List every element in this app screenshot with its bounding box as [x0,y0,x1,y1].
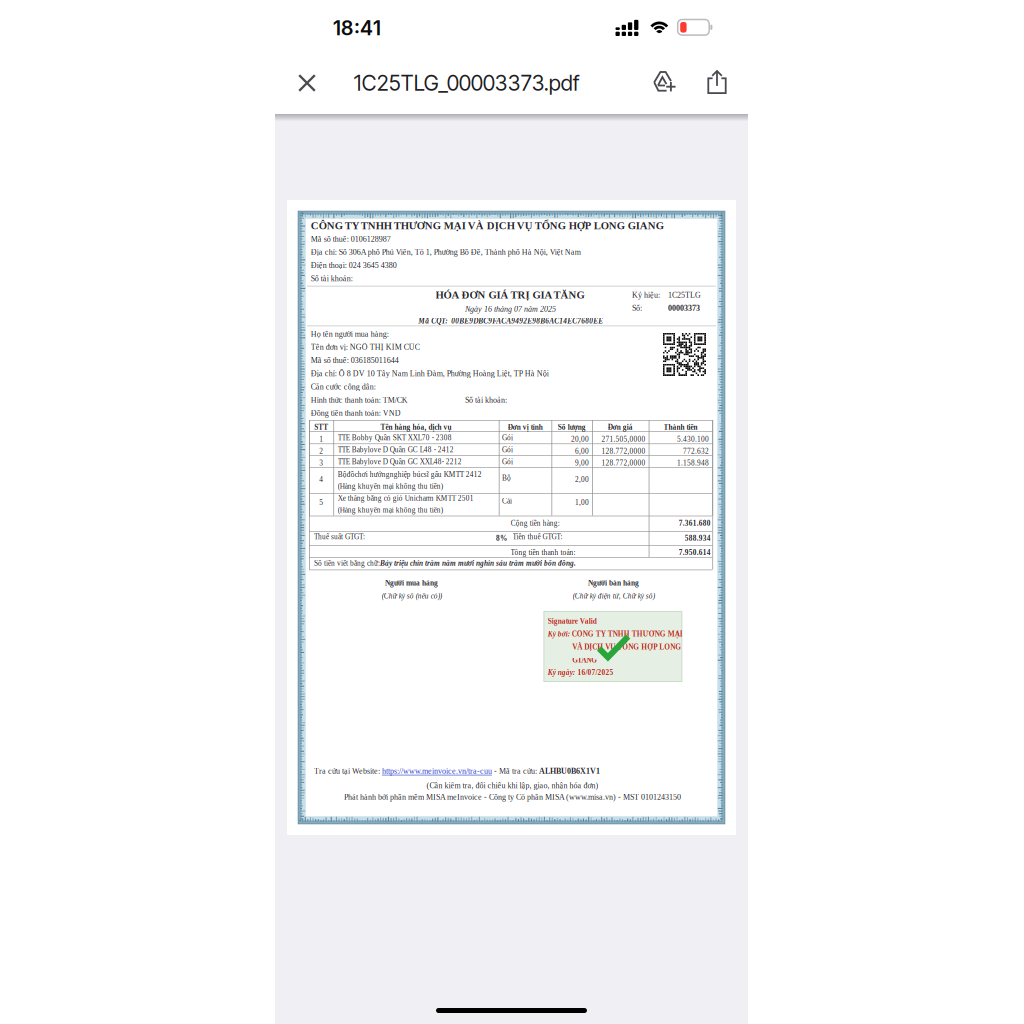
staticText: 128.772,0000 [601,447,645,455]
staticText: Địa chỉ: Số 306A phố Phú Viên, Tổ 1, Phư… [311,248,581,257]
staticText: 00003373 [668,303,700,312]
staticText: Thành tiền [663,423,697,431]
staticText: Số tài khoản: [465,395,507,404]
staticText: Gói [502,434,513,442]
staticText: Căn cước công dân: [311,382,376,391]
staticText: 588.934 [685,534,711,542]
staticText: (Hàng khuyến mại không thu tiền) [338,482,443,490]
staticText: 4 [319,475,323,483]
staticText: (Cần kiểm tra, đối chiếu khi lập, giao, … [426,781,598,790]
staticText: Người bán hàng [588,579,639,587]
staticText: - Mã tra cứu: [492,766,539,775]
staticText: 16/07/2025 [577,668,613,677]
staticText: Cái [502,497,512,505]
staticText: 5.430.100 [677,435,709,443]
staticText: Đồng tiền thanh toán: VND [311,409,401,418]
staticText: STT [314,423,328,431]
staticText: (Hàng khuyến mại không thu tiền) [338,506,443,514]
staticText: 7.361.680 [679,519,711,527]
staticText: Ký bởi: [548,630,570,638]
staticText: Phát hành bởi phần mềm MISA meInvoice - … [344,793,681,801]
staticText: Tiền thuế GTGT: [512,533,562,541]
staticText: 6,00 [575,447,589,455]
staticText: 7.950.614 [679,548,711,557]
staticText: Gói [502,446,513,454]
staticText: Số tiền viết bằng chữ: [314,559,380,567]
staticText: Mã số thuế: 0106128987 [311,234,391,243]
staticText: Ngày 16 tháng 07 năm 2025 [465,305,556,313]
staticText: 3 [319,459,323,467]
staticText: 18:41 [333,16,381,40]
staticText: Xe thăng bằng có giỏ Unicharm KMTT 2501 [338,494,474,502]
staticText: Thuế suất GTGT: [314,533,365,541]
staticText: Tổng tiền thanh toán: [511,548,576,557]
staticText: Họ tên người mua hàng: [311,329,389,338]
staticText: 128.772,0000 [601,459,645,467]
staticText: Tra cứu tại Website: [314,766,382,775]
staticText: Mã số thuế: 036185011644 [311,356,399,365]
staticText: (Chữ ký điện tử, Chữ ký số) [573,592,655,600]
staticText: CÔNG TY TNHH THƯƠNG MẠI [572,630,683,638]
staticText: HÓA ĐƠN GIÁ TRỊ GIA TĂNG [435,289,584,301]
staticText: Số tài khoản: [311,274,353,283]
staticText: Cộng tiền hàng: [511,519,560,527]
staticText: 2 [319,447,323,455]
staticText: Hình thức thanh toán: TM/CK [311,395,408,404]
staticText: (Chữ ký số (nếu có)) [382,592,442,600]
staticText: GIANG [572,656,597,664]
staticText: Mã CQT: 00BE9DBC9FACA9492E98B6AC14EC7680… [418,317,603,325]
staticText: TTE Bobby Quần SKT XXL70 - 2308 [338,434,452,442]
staticText: Gói [502,458,513,466]
staticText: 20,00 [571,435,589,443]
staticText: 772.632 [683,447,709,455]
staticText: VÀ DỊCH VỤ TỔNG HỢP LONG [572,643,681,651]
staticText: 1 [319,435,323,443]
staticText: Bộ [502,474,511,482]
staticText: Ký ngày: [548,668,575,677]
staticText: Địa chỉ: Ô 8 DV 10 Tây Nam Linh Đàm, Phư… [311,369,549,378]
staticText: TTE Babylove D Quần GC L48 - 2412 [338,446,454,454]
staticText: 1,00 [575,498,589,506]
staticText: ALHBU0B6X1V1 [539,766,600,775]
staticText: Đơn giá [608,423,633,431]
staticText: https://www.meinvoice.vn/tra-cuu [382,766,492,775]
staticText: 1C25TLG_00003373.pdf [354,70,580,96]
staticText: Đơn vị tính [508,423,543,431]
staticText: Điện thoại: 024 3645 4380 [311,261,397,270]
staticText: Bộđồchơi hướngnghiệp búcsĩ gấu KMTT 2412 [338,470,482,478]
staticText: Số: [632,303,642,312]
staticText: 8% [496,534,507,542]
staticText: CÔNG TY TNHH THƯƠNG MẠI VÀ DỊCH VỤ TỔNG … [311,220,664,232]
staticText: 2,00 [575,475,589,483]
staticText: 271.505,0000 [601,435,645,443]
staticText: 1C25TLG [668,290,701,299]
staticText: TTE Babylove D Quần GC XXL48- 2212 [338,458,462,466]
staticText: Ký hiệu: [632,290,660,299]
staticText: 1.158.948 [677,459,709,467]
staticText: Tên hàng hóa, dịch vụ [381,423,452,431]
staticText: 5 [319,498,323,506]
staticText: 9,00 [575,459,589,467]
staticText: Tên đơn vị: NGÔ THỊ KIM CÚC [311,343,420,352]
staticText: Signature Valid [548,617,597,625]
staticText: Số lượng [558,423,586,431]
staticText: Bảy triệu chín trăm năm mươi nghìn sáu t… [380,559,576,567]
staticText: Người mua hàng [385,579,438,587]
